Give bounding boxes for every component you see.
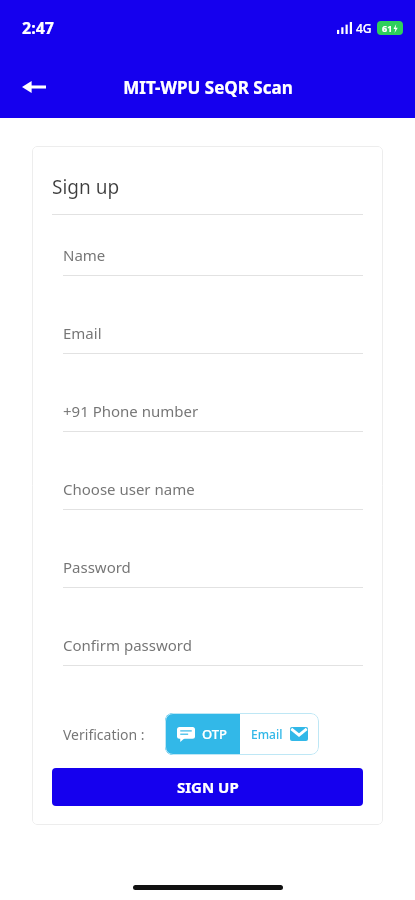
button[interactable]: Password [52,557,363,635]
button[interactable]: +91 Phone number [52,401,363,479]
staticText: 2:47 [22,17,54,39]
staticText: Email [63,323,102,343]
staticText: Name [63,245,106,265]
button[interactable]: Choose user name [52,479,363,557]
staticText: 61 [382,22,393,34]
button[interactable]: Email [52,323,363,401]
button[interactable]: Email [240,713,319,755]
staticText: MIT-WPU SeQR Scan [123,76,293,99]
staticText: Sign up [52,174,120,200]
staticText: Confirm password [63,635,192,655]
button[interactable]: Back [12,65,56,109]
button[interactable]: OTP [165,713,240,755]
staticText: Choose user name [63,479,195,499]
button[interactable]: SIGN UP [52,768,363,806]
button[interactable]: Name [52,245,363,323]
staticText: Verification : [63,725,145,744]
staticText: Password [63,557,131,577]
staticText: Email [251,726,283,742]
staticText: OTP [202,725,228,743]
staticText: +91 Phone number [63,401,199,421]
staticText: SIGN UP [177,777,239,797]
button[interactable]: Confirm password [52,635,363,713]
staticText: 4G [356,20,372,36]
